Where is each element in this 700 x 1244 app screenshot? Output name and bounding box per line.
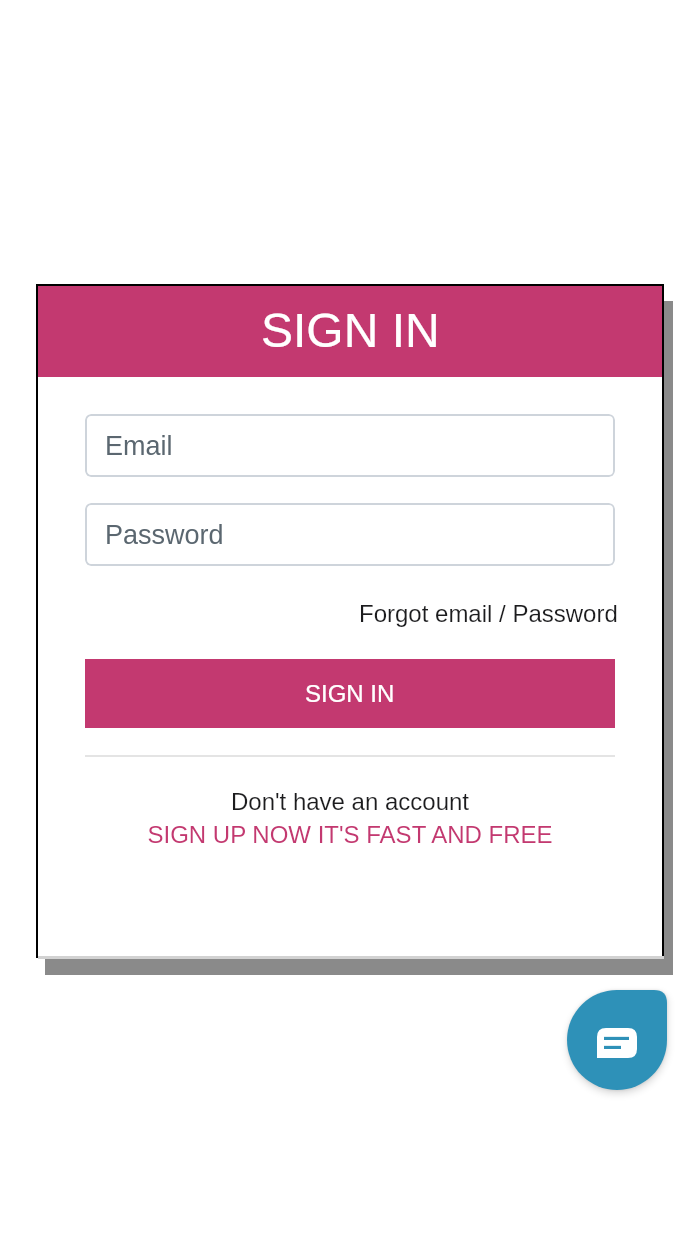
button[interactable]: Open chat — [567, 990, 667, 1090]
staticText: Password — [105, 520, 224, 550]
staticText: SIGN IN — [305, 680, 395, 707]
button[interactable]: Forgot email / Password — [359, 600, 618, 627]
staticText: Email — [105, 431, 173, 461]
button[interactable]: Password — [85, 503, 615, 566]
staticText: SIGN IN — [261, 304, 440, 358]
button[interactable]: Email — [85, 414, 615, 477]
button[interactable]: SIGN IN — [85, 659, 615, 728]
staticText: Don't have an account — [85, 788, 615, 815]
button[interactable]: SIGN UP NOW IT'S FAST AND FREE — [85, 821, 615, 848]
